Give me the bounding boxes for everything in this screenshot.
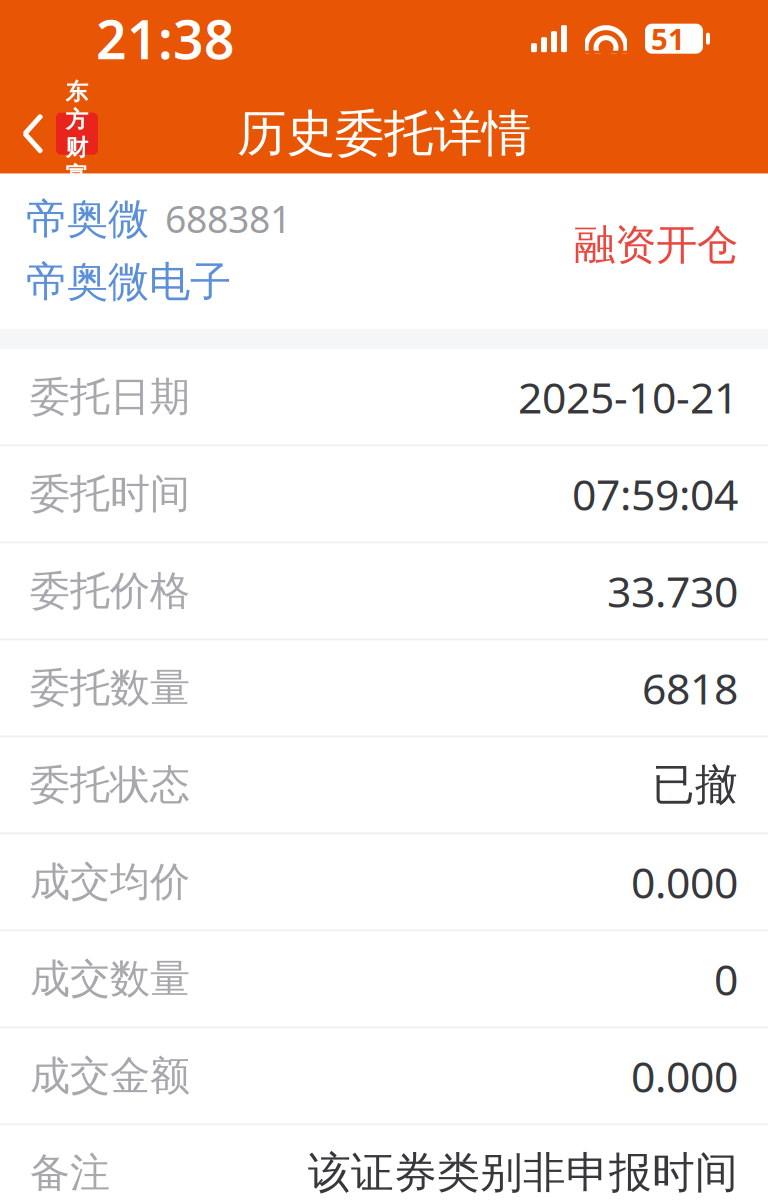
staticText: 东方 bbox=[65, 78, 88, 134]
staticText: 0.000 bbox=[631, 853, 738, 910]
staticText: 备注 bbox=[30, 1148, 110, 1197]
staticText: 委托时间 bbox=[30, 469, 190, 518]
staticText: 财富 bbox=[65, 134, 88, 189]
staticText: 21:38 bbox=[96, 3, 235, 74]
staticText: 0.000 bbox=[631, 1047, 738, 1104]
staticText: 委托数量 bbox=[30, 663, 190, 712]
staticText: 已撤 bbox=[652, 759, 738, 811]
staticText: 委托价格 bbox=[30, 566, 190, 615]
staticText: 帝奥微电子 bbox=[26, 257, 231, 307]
staticText: 6818 bbox=[642, 659, 738, 716]
staticText: 委托日期 bbox=[30, 372, 190, 421]
staticText: 帝奥微 bbox=[26, 194, 149, 245]
staticText: 成交均价 bbox=[30, 857, 190, 906]
staticText: 历史委托详情 bbox=[237, 103, 531, 164]
staticText: 成交数量 bbox=[30, 954, 190, 1003]
staticText: 51 bbox=[651, 19, 685, 58]
staticText: 688381 bbox=[165, 194, 291, 243]
staticText: 2025-10-21 bbox=[518, 368, 738, 425]
staticText: 该证券类别非申报时间 bbox=[308, 1147, 738, 1199]
staticText: 07:59:04 bbox=[572, 465, 738, 522]
staticText: 33.730 bbox=[607, 562, 738, 619]
button[interactable]: 返回 东方财富 bbox=[0, 94, 112, 174]
staticText: 委托状态 bbox=[30, 760, 190, 809]
staticText: 融资开仓 bbox=[574, 220, 738, 270]
staticText: 成交金额 bbox=[30, 1051, 190, 1100]
staticText: 0 bbox=[714, 950, 738, 1007]
